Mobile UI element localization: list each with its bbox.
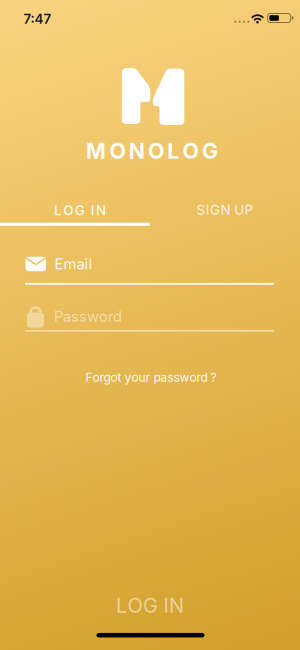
button[interactable]: L bbox=[5, 193, 155, 227]
staticText: M bbox=[86, 138, 106, 164]
staticText: G bbox=[202, 138, 218, 164]
staticText: Forgot your password ? bbox=[85, 370, 216, 385]
staticText: G bbox=[210, 202, 220, 218]
staticText: P bbox=[244, 202, 253, 218]
staticText: O bbox=[183, 138, 199, 164]
button[interactable]: Email bbox=[0, 249, 300, 279]
staticText: I bbox=[163, 594, 168, 617]
staticText: N bbox=[220, 202, 230, 218]
staticText: Password bbox=[54, 308, 122, 325]
staticText: O bbox=[148, 138, 164, 164]
staticText: 7:47 bbox=[23, 11, 51, 27]
staticText: S bbox=[196, 202, 205, 218]
staticText: O bbox=[63, 203, 73, 218]
staticText: U bbox=[234, 202, 244, 218]
staticText: O bbox=[127, 594, 142, 617]
button[interactable]: L bbox=[0, 577, 300, 633]
button[interactable]: Password bbox=[0, 301, 300, 331]
staticText: N bbox=[169, 594, 184, 617]
staticText: O bbox=[109, 138, 125, 164]
staticText: L bbox=[54, 203, 62, 218]
button[interactable]: S bbox=[150, 193, 300, 227]
staticText: L bbox=[167, 138, 179, 164]
staticText: N bbox=[129, 138, 145, 164]
staticText: L bbox=[116, 594, 127, 617]
staticText: G bbox=[143, 594, 158, 617]
staticText: G bbox=[75, 203, 85, 218]
staticText: I bbox=[206, 202, 210, 218]
staticText: I bbox=[91, 203, 95, 218]
staticText: Email bbox=[54, 255, 92, 273]
staticText: N bbox=[96, 203, 106, 218]
button[interactable]: Forgot your password ? bbox=[41, 362, 261, 392]
